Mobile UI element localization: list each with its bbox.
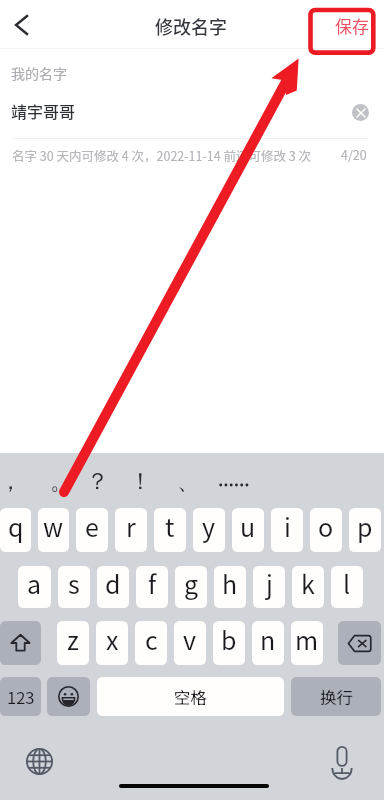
button[interactable]: r: [115, 508, 147, 552]
button[interactable]: 换行: [291, 677, 381, 716]
button[interactable]: j: [253, 566, 285, 608]
button[interactable]: n: [252, 621, 284, 665]
staticText: q: [8, 508, 24, 544]
button[interactable]: b: [213, 621, 245, 665]
button[interactable]: Ellipsis: [210, 453, 258, 508]
button[interactable]: g: [175, 566, 207, 608]
staticText: f: [148, 566, 157, 601]
staticText: n: [260, 621, 276, 657]
button[interactable]: 空格: [97, 677, 284, 716]
button[interactable]: ！: [119, 453, 161, 508]
staticText: y: [202, 508, 216, 544]
staticText: l: [343, 566, 351, 601]
staticText: d: [105, 566, 121, 601]
button[interactable]: ，: [0, 453, 31, 508]
staticText: 我的名字: [11, 63, 67, 83]
staticText: ！: [129, 467, 152, 496]
button[interactable]: v: [174, 621, 206, 665]
staticText: ？: [86, 467, 109, 496]
button[interactable]: f: [136, 566, 168, 608]
button[interactable]: l: [331, 566, 363, 608]
button[interactable]: z: [57, 621, 89, 665]
button[interactable]: h: [214, 566, 246, 608]
staticText: 靖宇哥哥: [11, 99, 76, 122]
staticText: 名字 30 天内可修改 4 次，2022-11-14 前还可修改 3 次: [12, 146, 312, 164]
button[interactable]: Backspace: [338, 621, 381, 665]
staticText: ，: [0, 467, 22, 496]
button[interactable]: m: [291, 621, 323, 665]
button[interactable]: d: [97, 566, 129, 608]
staticText: s: [68, 566, 80, 601]
staticText: u: [240, 508, 256, 544]
button[interactable]: q: [0, 508, 31, 552]
staticText: e: [85, 508, 99, 544]
staticText: m: [295, 621, 319, 657]
staticText: 。: [50, 467, 73, 496]
staticText: b: [221, 621, 237, 657]
staticText: c: [145, 621, 158, 657]
button[interactable]: 。: [40, 453, 82, 508]
button[interactable]: 、: [167, 453, 209, 508]
staticText: 123: [7, 685, 35, 709]
button[interactable]: Shift: [0, 621, 41, 665]
staticText: g: [184, 566, 199, 601]
button[interactable]: c: [135, 621, 167, 665]
button[interactable]: ？: [76, 453, 118, 508]
staticText: a: [27, 566, 42, 601]
staticText: k: [301, 566, 315, 601]
staticText: 、: [177, 467, 200, 496]
button[interactable]: s: [58, 566, 90, 608]
button[interactable]: p: [349, 508, 381, 552]
staticText: p: [357, 508, 373, 544]
button[interactable]: x: [96, 621, 128, 665]
staticText: 保存: [335, 13, 369, 38]
staticText: 换行: [320, 685, 353, 709]
staticText: j: [266, 566, 273, 601]
button[interactable]: y: [193, 508, 225, 552]
staticText: w: [43, 508, 64, 544]
button[interactable]: i: [271, 508, 303, 552]
button[interactable]: e: [76, 508, 108, 552]
button[interactable]: w: [38, 508, 69, 552]
staticText: o: [318, 508, 334, 544]
button[interactable]: u: [232, 508, 264, 552]
button[interactable]: k: [292, 566, 324, 608]
button[interactable]: Back: [0, 2, 44, 48]
button[interactable]: t: [154, 508, 186, 552]
button[interactable]: o: [310, 508, 342, 552]
button[interactable]: 保存: [318, 2, 384, 48]
button[interactable]: 靖宇哥哥: [0, 96, 384, 126]
staticText: x: [106, 621, 119, 657]
staticText: h: [222, 566, 238, 601]
staticText: 修改名字: [155, 13, 227, 39]
button[interactable]: a: [18, 566, 51, 608]
button[interactable]: Voice input: [323, 741, 361, 779]
staticText: 4/20: [341, 145, 367, 163]
staticText: 空格: [174, 685, 207, 709]
staticText: r: [126, 508, 136, 544]
staticText: v: [183, 621, 197, 657]
button[interactable]: Emoji keyboard: [47, 677, 90, 716]
button[interactable]: Switch input language: [20, 742, 58, 780]
staticText: z: [67, 621, 79, 657]
button[interactable]: 123: [0, 677, 41, 716]
button[interactable]: Clear text: [352, 104, 369, 121]
staticText: i: [284, 508, 291, 544]
staticText: t: [165, 508, 175, 544]
